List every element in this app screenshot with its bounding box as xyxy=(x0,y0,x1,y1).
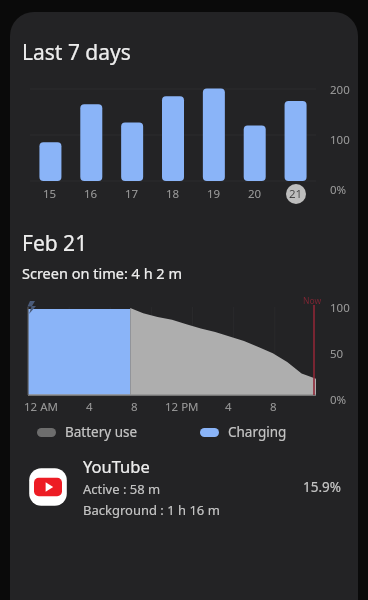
staticText: 4 xyxy=(225,399,232,415)
button[interactable]: 21 xyxy=(286,184,306,204)
staticText: 0% xyxy=(330,182,347,198)
button[interactable]: YouTube xyxy=(10,455,358,519)
staticText: 18 xyxy=(166,186,180,202)
staticText: Screen on time: 4 h 2 m xyxy=(22,263,182,283)
staticText: Battery use xyxy=(65,423,138,441)
staticText: Charging xyxy=(228,423,287,441)
button[interactable]: 20 xyxy=(245,184,265,204)
button[interactable]: 15 xyxy=(40,184,60,204)
staticText: 8 xyxy=(270,399,277,415)
staticText: Now xyxy=(303,295,322,307)
staticText: 100 xyxy=(330,300,350,316)
staticText: 19 xyxy=(207,186,221,202)
staticText: 200 xyxy=(330,82,350,98)
button[interactable]: Battery use xyxy=(37,423,138,441)
button[interactable]: Charging xyxy=(200,423,287,441)
staticText: 12 PM xyxy=(165,399,199,415)
staticText: 21 xyxy=(289,186,303,202)
staticText: Background : 1 h 16 m xyxy=(83,501,220,519)
staticText: 100 xyxy=(330,132,350,148)
button[interactable]: 16 xyxy=(81,184,101,204)
staticText: Last 7 days xyxy=(22,38,131,67)
staticText: 4 xyxy=(86,399,93,415)
staticText: 17 xyxy=(125,186,139,202)
staticText: Feb 21 xyxy=(22,229,88,258)
staticText: 15.9% xyxy=(303,478,342,496)
staticText: 15 xyxy=(43,186,57,202)
staticText: 8 xyxy=(131,399,138,415)
staticText: YouTube xyxy=(83,455,150,477)
staticText: 20 xyxy=(248,186,262,202)
staticText: 50 xyxy=(330,346,344,362)
button[interactable]: 19 xyxy=(204,184,224,204)
button[interactable]: 17 xyxy=(122,184,142,204)
button[interactable]: 18 xyxy=(163,184,183,204)
staticText: Active : 58 m xyxy=(83,480,161,498)
staticText: 12 AM xyxy=(24,399,58,415)
staticText: 16 xyxy=(84,186,98,202)
staticText: 0% xyxy=(330,392,347,408)
